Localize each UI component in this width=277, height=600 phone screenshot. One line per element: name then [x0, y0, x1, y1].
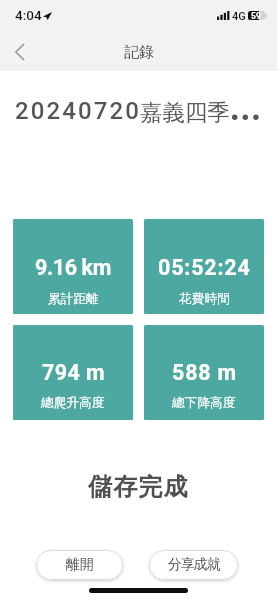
staticText: 4:04 — [15, 7, 42, 23]
staticText: 離開 — [66, 556, 94, 574]
staticText: 累計距離 — [48, 291, 99, 307]
button[interactable]: 588 m — [144, 325, 264, 420]
staticText: 20240720 — [15, 97, 141, 125]
staticText: 9.16 km — [35, 255, 111, 280]
staticText: 05:52:24 — [158, 255, 251, 280]
button[interactable]: 794 m — [13, 325, 133, 420]
staticText: 794 m — [42, 360, 105, 385]
staticText: 儲存完成 — [88, 472, 189, 502]
staticText: 花費時間 — [179, 291, 230, 307]
staticText: 記錄 — [124, 43, 154, 62]
staticText: 588 m — [172, 360, 237, 385]
staticText: 分享成就 — [168, 556, 220, 574]
button[interactable]: 05:52:24 — [144, 219, 264, 314]
button[interactable]: 分享成就 — [149, 550, 238, 580]
button[interactable]: Back — [0, 33, 38, 71]
staticText: 4G — [232, 10, 246, 23]
button[interactable]: 離開 — [36, 550, 123, 580]
staticText: 總爬升高度 — [41, 395, 105, 411]
staticText: 59 — [251, 11, 261, 20]
staticText: 嘉義四季 — [140, 98, 230, 126]
button[interactable]: 9.16 km — [13, 219, 133, 314]
staticText: 總下降高度 — [172, 395, 236, 411]
